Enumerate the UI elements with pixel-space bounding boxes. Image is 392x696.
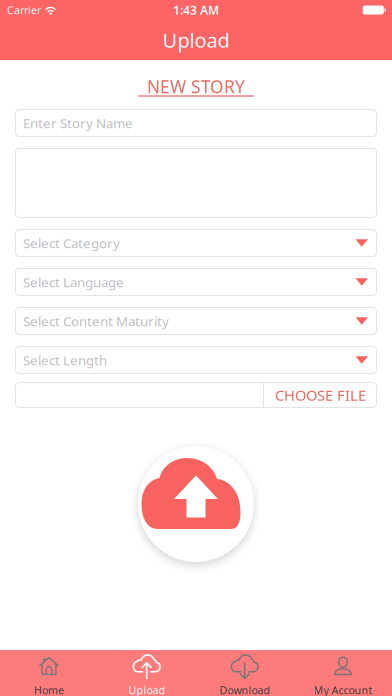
staticText: Select Language: [23, 273, 124, 291]
button[interactable]: CHOOSE FILE: [263, 382, 377, 408]
button[interactable]: Select Category: [15, 229, 377, 257]
staticText: CHOOSE FILE: [275, 385, 366, 405]
button[interactable]: Upload: [98, 650, 196, 696]
staticText: Upload: [162, 27, 229, 53]
button[interactable]: Download: [196, 650, 294, 696]
button[interactable]: Select Length: [15, 346, 377, 374]
staticText: Home: [34, 683, 64, 696]
button[interactable]: Select Language: [15, 268, 377, 296]
button[interactable]: My Account: [294, 650, 392, 696]
button[interactable]: File name: [15, 382, 263, 408]
staticText: My Account: [313, 683, 372, 696]
staticText: 1:43 AM: [173, 2, 219, 18]
staticText: Select Category: [23, 234, 120, 252]
button[interactable]: Select Content Maturity: [15, 307, 377, 335]
staticText: NEW STORY: [147, 75, 245, 98]
staticText: Enter Story Name: [23, 114, 133, 132]
button[interactable]: [15, 148, 377, 218]
button[interactable]: Upload file: [138, 446, 254, 562]
button[interactable]: Enter Story Name: [15, 109, 377, 137]
staticText: Select Length: [23, 351, 107, 369]
staticText: Download: [219, 683, 270, 696]
button[interactable]: Home: [0, 650, 98, 696]
staticText: Select Content Maturity: [23, 312, 169, 330]
staticText: Upload: [128, 683, 165, 696]
staticText: Carrier: [7, 3, 41, 17]
